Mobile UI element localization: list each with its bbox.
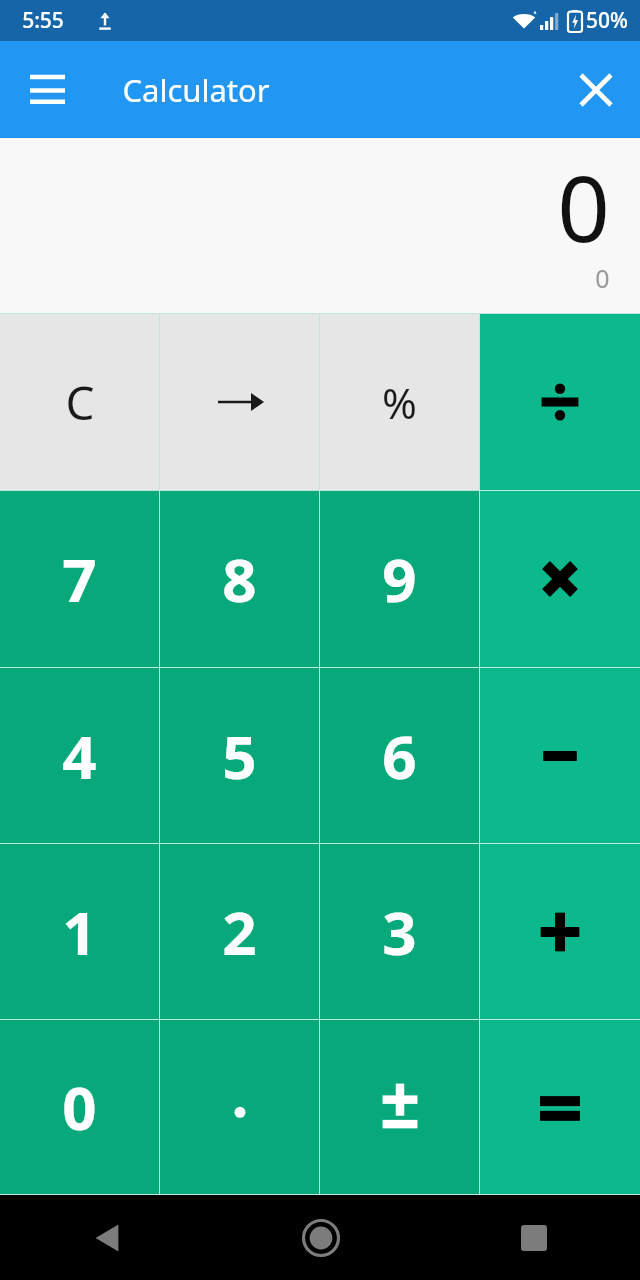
- button[interactable]: Minus: [480, 668, 640, 843]
- staticText: 2: [222, 891, 257, 973]
- staticText: 0: [62, 1066, 97, 1148]
- button[interactable]: 5: [160, 668, 319, 843]
- button[interactable]: 0: [0, 1020, 159, 1194]
- button[interactable]: 8: [160, 491, 319, 667]
- button[interactable]: Backspace: [160, 314, 319, 490]
- button[interactable]: %: [320, 314, 479, 490]
- button[interactable]: 3: [320, 844, 479, 1019]
- staticText: %: [382, 374, 417, 431]
- staticText: 0: [557, 144, 610, 269]
- other: Equals: [530, 1077, 590, 1137]
- other: Plus: [530, 902, 590, 962]
- button[interactable]: Decimal point: [160, 1020, 319, 1194]
- button[interactable]: Close: [566, 60, 626, 120]
- button[interactable]: 4: [0, 668, 159, 843]
- staticText: 3: [382, 891, 417, 973]
- other: Multiply: [530, 549, 590, 609]
- button[interactable]: Back: [0, 1195, 214, 1280]
- other: Divide: [530, 372, 590, 432]
- other: Plus or minus: [370, 1077, 430, 1137]
- other: Minus: [530, 726, 590, 786]
- button[interactable]: Home: [214, 1195, 427, 1280]
- staticText: 6: [382, 715, 417, 797]
- other: Backspace: [210, 380, 270, 424]
- button[interactable]: 6: [320, 668, 479, 843]
- staticText: 4: [62, 715, 97, 797]
- button[interactable]: Plus or minus: [320, 1020, 479, 1194]
- button[interactable]: Multiply: [480, 491, 640, 667]
- staticText: 9: [382, 538, 417, 620]
- button[interactable]: 1: [0, 844, 159, 1019]
- button[interactable]: Divide: [480, 314, 640, 490]
- staticText: 5:55: [22, 6, 64, 35]
- button[interactable]: Plus: [480, 844, 640, 1019]
- button[interactable]: Open navigation menu: [16, 59, 78, 121]
- button[interactable]: Recent apps: [427, 1195, 640, 1280]
- button[interactable]: C: [0, 314, 159, 490]
- staticText: Calculator: [122, 69, 270, 111]
- staticText: C: [65, 371, 95, 434]
- staticText: 5: [222, 715, 257, 797]
- staticText: 8: [222, 538, 257, 620]
- staticText: 0: [595, 261, 610, 295]
- staticText: 1: [62, 891, 97, 973]
- button[interactable]: 7: [0, 491, 159, 667]
- other: Decimal point: [210, 1077, 270, 1137]
- staticText: 7: [62, 538, 97, 620]
- button[interactable]: 2: [160, 844, 319, 1019]
- button[interactable]: 9: [320, 491, 479, 667]
- button[interactable]: Equals: [480, 1020, 640, 1194]
- staticText: 50%: [586, 6, 628, 35]
